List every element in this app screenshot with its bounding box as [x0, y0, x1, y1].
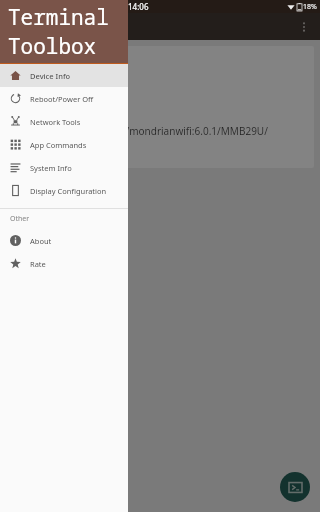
staticText: 14:06 — [128, 1, 149, 12]
staticText: Display Configuration — [30, 186, 107, 196]
staticText: App Commands — [30, 140, 87, 150]
staticText: Device Info — [30, 71, 71, 81]
staticText: Toolbox — [8, 32, 97, 61]
staticText: Reboot/Power Off — [30, 94, 94, 104]
button[interactable]: Device Info — [0, 64, 128, 87]
button[interactable]: Reboot/Power Off — [0, 87, 128, 110]
staticText: 18% — [303, 2, 317, 12]
button[interactable]: Network Tools — [0, 110, 128, 133]
staticText: samsung/mondrianwifi/mondrianwifi:6.0.1/… — [16, 124, 268, 138]
staticText: Other — [10, 214, 30, 224]
button[interactable]: Open terminal — [280, 472, 310, 502]
staticText: Your Device: SM-T320 — [16, 56, 127, 71]
button[interactable]: Rate — [0, 252, 128, 275]
staticText: Rate — [30, 259, 46, 269]
button[interactable]: System Info — [0, 156, 128, 179]
staticText: Network Tools — [30, 117, 81, 127]
button[interactable]: Display Configuration — [0, 179, 128, 202]
staticText: Terminal — [8, 3, 109, 32]
staticText: System Info — [30, 163, 72, 173]
button[interactable]: More options — [292, 15, 316, 39]
staticText: About — [30, 236, 52, 246]
button[interactable]: About — [0, 229, 128, 252]
button[interactable]: App Commands — [0, 133, 128, 156]
